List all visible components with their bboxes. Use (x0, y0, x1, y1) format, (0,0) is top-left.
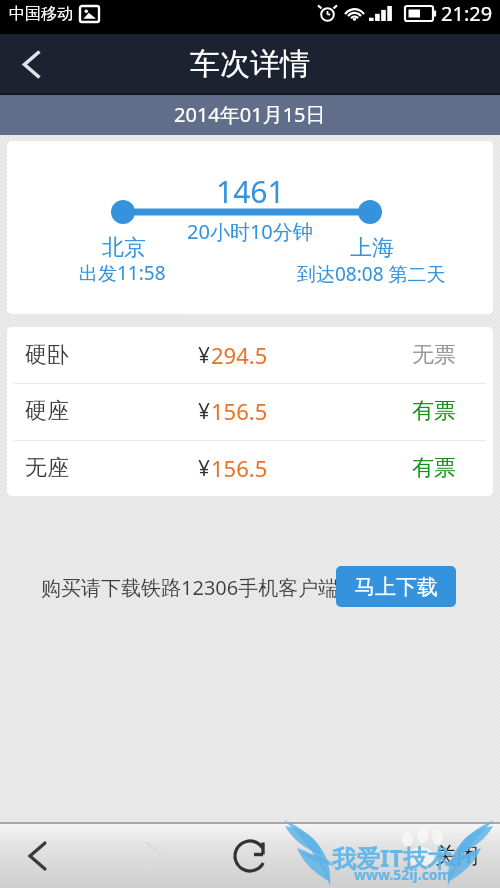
staticText: 无票 (412, 341, 456, 369)
button[interactable]: 返回 (0, 34, 54, 95)
staticText: 关闭 (435, 842, 479, 870)
staticText: 中国移动 (9, 4, 73, 24)
staticText: www.52ij.com (354, 865, 452, 884)
staticText: 硬座 (25, 397, 69, 425)
staticText: 马上下载 (354, 574, 438, 600)
button[interactable]: 无座 (7, 440, 493, 496)
button[interactable]: 硬座 (7, 383, 493, 439)
staticText: 1461 (216, 171, 285, 212)
staticText: 有票 (412, 397, 456, 425)
staticText: 156.5 (211, 453, 268, 483)
staticText: 有票 (412, 454, 456, 482)
staticText: ¥ (198, 454, 211, 483)
staticText: 车次详情 (190, 45, 310, 83)
button[interactable]: 刷新 (210, 824, 290, 888)
staticText: 156.5 (211, 396, 268, 426)
staticText: 我爱IT技术 (332, 841, 452, 874)
button[interactable]: 关闭 (435, 824, 479, 888)
staticText: 21:29 (441, 0, 493, 27)
button[interactable]: 马上下载 (336, 566, 456, 607)
staticText: 北京 (102, 234, 146, 262)
button[interactable]: 前进 (117, 824, 191, 888)
staticText: 20小时10分钟 (187, 218, 313, 245)
button[interactable]: 硬卧 (7, 327, 493, 383)
staticText: 到达08:08 第二天 (297, 261, 446, 287)
staticText: ¥ (198, 397, 211, 426)
staticText: ¥ (198, 341, 211, 370)
staticText: 294.5 (211, 340, 268, 370)
staticText: 出发11:58 (79, 260, 166, 286)
staticText: 购买请下载铁路12306手机客户端 (41, 574, 339, 601)
staticText: 无座 (25, 454, 69, 482)
button[interactable]: 后退 (0, 824, 74, 888)
staticText: 2014年01月15日 (174, 101, 326, 128)
staticText: 硬卧 (25, 341, 69, 369)
staticText: 上海 (350, 234, 394, 262)
